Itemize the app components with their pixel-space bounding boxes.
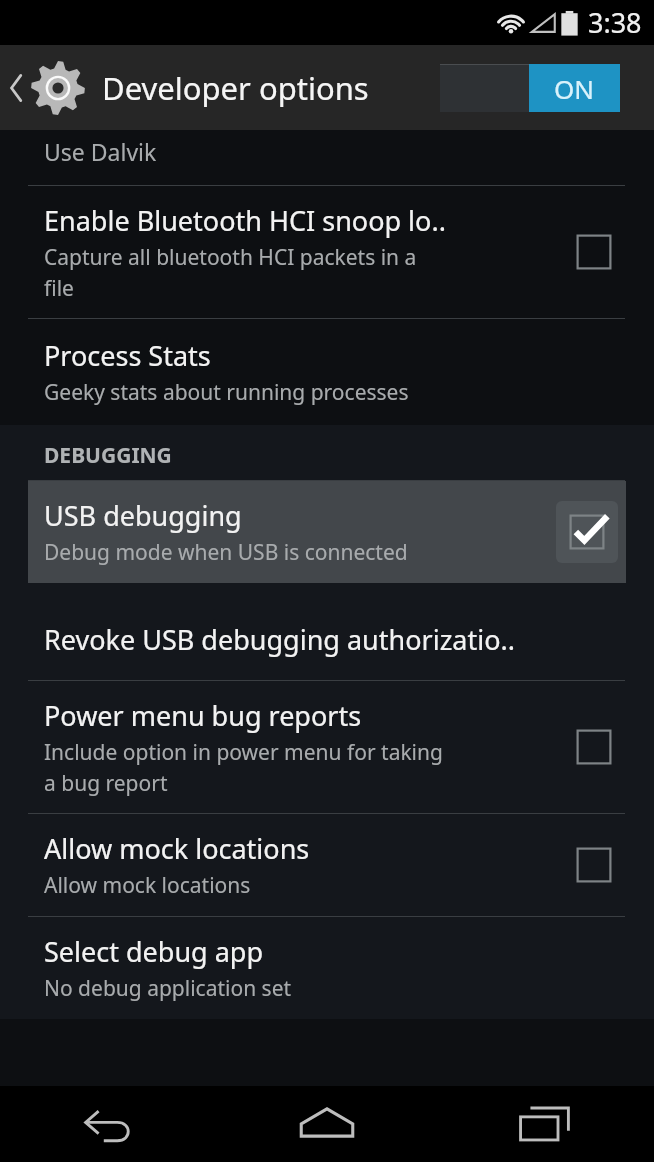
button[interactable]: Navigate up: [0, 50, 90, 126]
staticText: Process Stats: [44, 337, 211, 374]
button[interactable]: Process Stats: [0, 319, 654, 425]
staticText: USB debugging: [44, 497, 242, 534]
button[interactable]: Back: [0, 1086, 218, 1162]
button[interactable]: Enable Bluetooth HCI snoop lo..: [0, 186, 654, 318]
staticText: Geeky stats about running processes: [44, 378, 409, 407]
staticText: Use Dalvik: [44, 136, 157, 167]
staticText: Allow mock locations: [44, 871, 251, 900]
button[interactable]: Revoke USB debugging authorizatio..: [0, 599, 654, 680]
button[interactable]: USB debugging: [28, 481, 626, 583]
staticText: Debug mode when USB is connected: [44, 538, 408, 567]
button[interactable]: Recent apps: [436, 1086, 654, 1162]
button[interactable]: Use Dalvik: [0, 130, 654, 185]
staticText: Include option in power menu for taking …: [44, 738, 443, 797]
staticText: Allow mock locations: [44, 830, 310, 867]
staticText: Power menu bug reports: [44, 697, 362, 734]
button[interactable]: Developer options on: [440, 64, 620, 112]
staticText: DEBUGGING: [44, 441, 172, 470]
staticText: No debug application set: [44, 974, 292, 1003]
staticText: Capture all bluetooth HCI packets in a f…: [44, 243, 417, 302]
staticText: Developer options: [102, 67, 369, 109]
staticText: Enable Bluetooth HCI snoop lo..: [44, 202, 446, 239]
staticText: ON: [554, 71, 595, 106]
button[interactable]: Select debug app: [0, 917, 654, 1019]
staticText: Revoke USB debugging authorizatio..: [44, 621, 516, 658]
button[interactable]: Home: [218, 1086, 436, 1162]
button[interactable]: Power menu bug reports: [0, 681, 654, 813]
staticText: 3:38: [588, 4, 642, 41]
staticText: Select debug app: [44, 933, 264, 970]
button[interactable]: Allow mock locations: [0, 814, 654, 916]
